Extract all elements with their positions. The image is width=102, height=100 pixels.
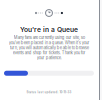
staticText: Status last updated: 10:15:33 bbox=[26, 91, 71, 94]
staticText: You're in a Queue bbox=[20, 25, 78, 34]
staticText: Many fans are currently using our site, … bbox=[8, 35, 89, 60]
